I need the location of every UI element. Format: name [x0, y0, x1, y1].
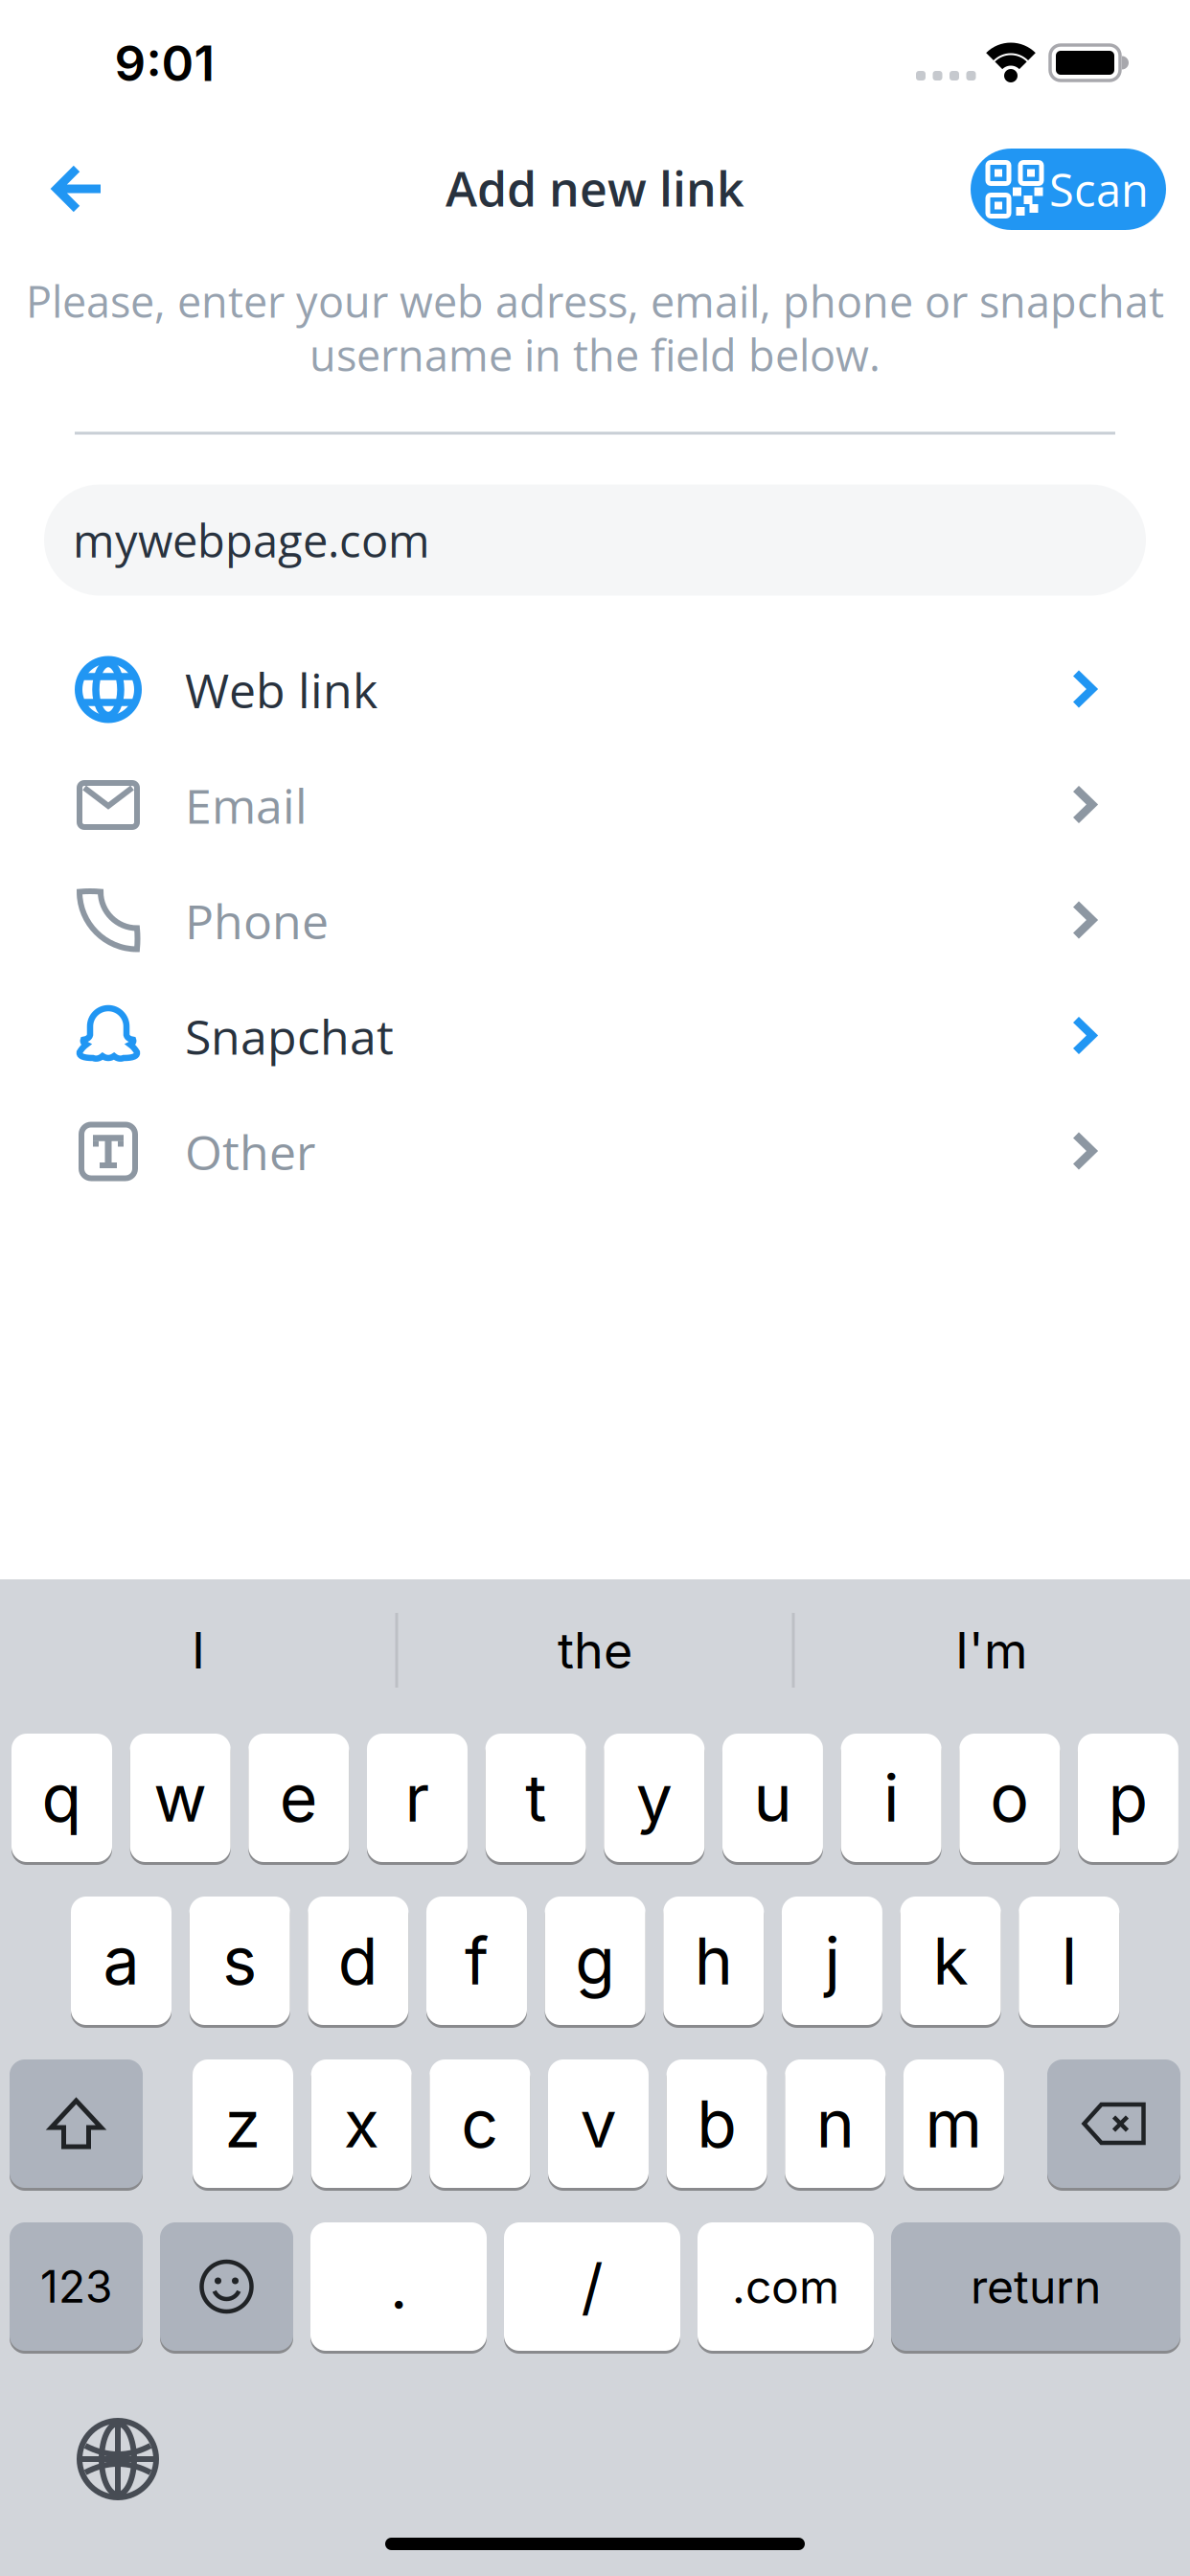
staticText: / [581, 2249, 603, 2324]
button[interactable]: Other [78, 1094, 1096, 1209]
staticText: Phone [185, 888, 329, 953]
staticText: 9:01 [114, 34, 215, 93]
button[interactable]: e [248, 1732, 349, 1863]
staticText: the [558, 1620, 632, 1680]
button[interactable]: m [904, 2058, 1004, 2189]
button[interactable]: Emoji [160, 2221, 293, 2352]
button[interactable]: c [430, 2058, 530, 2189]
staticText: .com [732, 2259, 839, 2314]
staticText: u [754, 1758, 792, 1837]
button[interactable]: g [545, 1895, 645, 2026]
button[interactable]: 123 [10, 2221, 143, 2352]
button[interactable]: Back [53, 165, 103, 213]
button[interactable]: / [504, 2221, 680, 2352]
staticText: Add new link [446, 155, 744, 221]
button[interactable]: x [311, 2058, 412, 2189]
staticText: i [883, 1758, 899, 1837]
button[interactable]: a [71, 1895, 172, 2026]
button[interactable]: b [666, 2058, 767, 2189]
button[interactable]: .com [698, 2221, 874, 2352]
button[interactable]: p [1078, 1732, 1178, 1863]
staticText: return [971, 2259, 1101, 2314]
button[interactable]: return [891, 2221, 1180, 2352]
staticText: r [405, 1758, 430, 1837]
button[interactable]: u [722, 1732, 823, 1863]
button[interactable]: f [426, 1895, 527, 2026]
staticText: m [925, 2084, 983, 2163]
button[interactable]: j [782, 1895, 882, 2026]
button[interactable]: k [900, 1895, 1001, 2026]
staticText: g [575, 1921, 615, 2000]
button[interactable]: h [663, 1895, 764, 2026]
button[interactable]: l [1019, 1895, 1119, 2026]
button[interactable]: Scan [971, 149, 1166, 230]
staticText: . [390, 2249, 407, 2324]
button[interactable]: Email [78, 747, 1096, 862]
staticText: Snapchat [185, 1003, 394, 1069]
staticText: Scan [1049, 159, 1149, 220]
staticText: Please, enter your web adress, email, ph… [26, 272, 1164, 330]
staticText: e [280, 1758, 318, 1837]
button[interactable]: Shift [10, 2058, 143, 2189]
staticText: mywebpage.com [73, 509, 430, 571]
button[interactable]: t [485, 1732, 586, 1863]
staticText: Other [185, 1119, 315, 1184]
staticText: o [990, 1758, 1029, 1837]
staticText: I'm [955, 1620, 1028, 1680]
staticText: d [338, 1921, 378, 2000]
button[interactable]: Web link [78, 632, 1096, 747]
staticText: Web link [185, 657, 378, 722]
button[interactable]: Phone [78, 863, 1096, 978]
staticText: a [103, 1921, 139, 2000]
button[interactable]: r [367, 1732, 468, 1863]
staticText: k [933, 1921, 968, 2000]
button[interactable]: o [959, 1732, 1060, 1863]
button[interactable]: the [413, 1602, 777, 1698]
staticText: z [225, 2084, 261, 2163]
staticText: Email [185, 772, 308, 838]
staticText: p [1108, 1758, 1148, 1837]
staticText: v [580, 2084, 617, 2163]
button[interactable]: Delete [1047, 2058, 1180, 2189]
staticText: I [192, 1620, 205, 1680]
staticText: q [42, 1758, 82, 1837]
button[interactable]: w [130, 1732, 231, 1863]
button[interactable]: . [310, 2221, 487, 2352]
staticText: j [824, 1921, 840, 2000]
staticText: username in the field below. [309, 325, 881, 384]
button[interactable]: n [785, 2058, 886, 2189]
staticText: x [344, 2084, 379, 2163]
button[interactable]: I [16, 1602, 380, 1698]
button[interactable]: I'm [810, 1602, 1174, 1698]
staticText: h [694, 1921, 733, 2000]
staticText: b [697, 2084, 737, 2163]
button[interactable]: v [548, 2058, 649, 2189]
staticText: n [816, 2084, 854, 2163]
staticText: c [461, 2084, 499, 2163]
staticText: 123 [40, 2260, 112, 2313]
button[interactable]: z [193, 2058, 293, 2189]
staticText: l [1061, 1921, 1077, 2000]
staticText: s [222, 1921, 257, 2000]
staticText: y [636, 1758, 672, 1837]
button[interactable]: i [841, 1732, 941, 1863]
button[interactable]: y [604, 1732, 705, 1863]
button[interactable]: s [189, 1895, 290, 2026]
button[interactable]: d [308, 1895, 408, 2026]
staticText: t [525, 1758, 546, 1837]
staticText: w [153, 1758, 207, 1837]
button[interactable]: Snapchat [78, 978, 1096, 1093]
staticText: f [465, 1921, 489, 2000]
button[interactable]: Next keyboard [80, 2421, 156, 2497]
button[interactable]: q [11, 1732, 112, 1863]
